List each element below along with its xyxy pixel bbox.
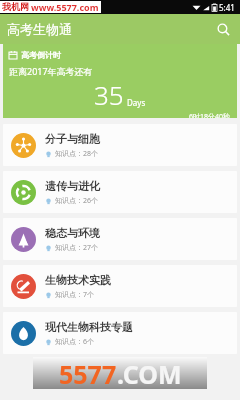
staticText: 我机网 (2, 1, 29, 12)
staticText: 35 (94, 77, 124, 112)
button[interactable]: 生物技术实践 (3, 265, 237, 307)
button[interactable]: 现代生物科技专题 (3, 312, 237, 354)
staticText: 6时18分40秒 (189, 112, 231, 118)
staticText: 生物技术实践 (45, 273, 111, 287)
staticText: 高考倒计时 (21, 50, 61, 60)
staticText: 距离2017年高考还有 (9, 65, 93, 77)
staticText: .COM (117, 357, 182, 389)
staticText: 知识点：26个 (55, 196, 99, 206)
staticText: 知识点：28个 (55, 149, 99, 159)
button[interactable]: 遗传与进化 (3, 171, 237, 213)
button[interactable]: 分子与细胞 (3, 124, 237, 166)
staticText: 知识点：7个 (55, 290, 95, 300)
staticText: Days (127, 97, 146, 108)
staticText: 稳态与环境 (45, 226, 100, 240)
button[interactable]: 高考倒计时 (3, 44, 237, 118)
staticText: 知识点：27个 (55, 243, 99, 253)
staticText: 遗传与进化 (45, 179, 100, 193)
staticText: 分子与细胞 (45, 132, 100, 146)
button[interactable]: Search (210, 16, 236, 42)
staticText: 现代生物科技专题 (45, 320, 133, 334)
staticText: 知识点：6个 (55, 337, 95, 347)
staticText: 高考生物通 (7, 21, 72, 37)
staticText: 5:41 (219, 2, 235, 13)
staticText: www.5577.com (31, 1, 99, 13)
staticText: 5577 (59, 357, 117, 389)
button[interactable]: 稳态与环境 (3, 218, 237, 260)
